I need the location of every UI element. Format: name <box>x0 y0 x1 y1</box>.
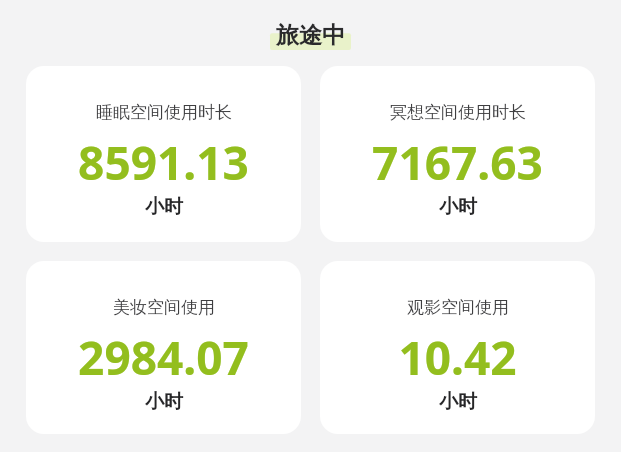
staticText: 冥想空间使用时长 <box>390 102 526 123</box>
staticText: 睡眠空间使用时长 <box>96 102 232 123</box>
staticText: 7167.63 <box>372 131 543 194</box>
staticText: 小时 <box>439 195 477 219</box>
button[interactable]: 睡眠空间使用时长 <box>26 66 301 242</box>
staticText: 小时 <box>145 390 183 414</box>
staticText: 美妆空间使用 <box>113 297 215 318</box>
staticText: 2984.07 <box>78 326 249 389</box>
staticText: 旅途中 <box>276 21 345 50</box>
staticText: 8591.13 <box>78 131 249 194</box>
button[interactable]: 观影空间使用 <box>320 261 595 434</box>
staticText: 小时 <box>145 195 183 219</box>
staticText: 小时 <box>439 390 477 414</box>
staticText: 观影空间使用 <box>407 297 509 318</box>
staticText: 10.42 <box>398 326 517 389</box>
button[interactable]: 美妆空间使用 <box>26 261 301 434</box>
button[interactable]: 冥想空间使用时长 <box>320 66 595 242</box>
